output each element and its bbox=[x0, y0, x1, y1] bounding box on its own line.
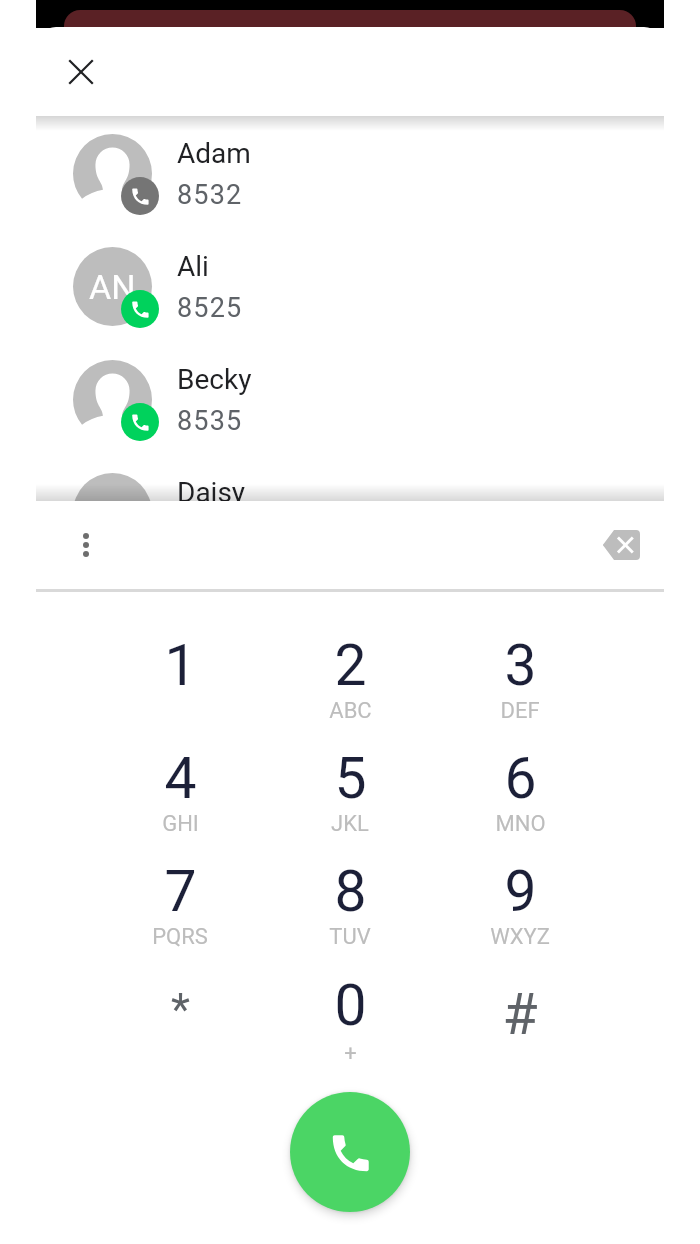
button[interactable]: 6 bbox=[435, 727, 605, 840]
button[interactable]: Close bbox=[58, 49, 104, 95]
button[interactable]: 4 bbox=[95, 727, 265, 840]
staticText: 7 bbox=[164, 858, 197, 925]
staticText: 8 bbox=[334, 858, 367, 925]
staticText: + bbox=[344, 1041, 357, 1067]
button[interactable]: AN bbox=[36, 230, 664, 343]
staticText: 1 bbox=[164, 632, 197, 699]
button[interactable]: 7 bbox=[95, 840, 265, 953]
staticText: 0 bbox=[334, 972, 367, 1039]
staticText: 8535 bbox=[177, 405, 243, 437]
staticText: MNO bbox=[495, 811, 546, 837]
staticText: JKL bbox=[331, 811, 369, 837]
button[interactable]: Call bbox=[290, 1092, 410, 1212]
staticText: AN bbox=[89, 267, 136, 307]
staticText: 3 bbox=[504, 632, 537, 699]
staticText: DEF bbox=[500, 698, 540, 724]
staticText: 5 bbox=[334, 745, 367, 812]
button[interactable]: 5 bbox=[265, 727, 435, 840]
button[interactable]: Adam bbox=[36, 117, 664, 230]
staticText: WXYZ bbox=[490, 924, 550, 950]
staticText: Becky bbox=[177, 363, 252, 396]
button[interactable]: 0 bbox=[265, 954, 435, 1067]
staticText: 4 bbox=[164, 745, 197, 812]
button[interactable]: 1 bbox=[95, 614, 265, 727]
button[interactable]: More options bbox=[63, 522, 109, 568]
staticText: # bbox=[502, 981, 538, 1048]
staticText: GHI bbox=[162, 811, 199, 837]
button[interactable]: 8 bbox=[265, 840, 435, 953]
button[interactable]: Daisy bbox=[36, 456, 664, 501]
staticText: * bbox=[171, 984, 190, 1036]
staticText: 2 bbox=[334, 632, 367, 699]
staticText: PQRS bbox=[152, 924, 208, 950]
button[interactable]: Backspace bbox=[593, 517, 649, 573]
staticText: Adam bbox=[177, 137, 251, 170]
staticText: Ali bbox=[177, 250, 209, 283]
staticText: 6 bbox=[504, 745, 537, 812]
staticText: 8525 bbox=[177, 292, 243, 324]
staticText: ABC bbox=[329, 698, 372, 724]
staticText: Daisy bbox=[177, 476, 246, 501]
button[interactable]: 2 bbox=[265, 614, 435, 727]
staticText: 9 bbox=[504, 858, 537, 925]
button[interactable]: 3 bbox=[435, 614, 605, 727]
button[interactable]: Becky bbox=[36, 343, 664, 456]
staticText: TUV bbox=[329, 924, 371, 950]
button[interactable]: 9 bbox=[435, 840, 605, 953]
button[interactable]: * bbox=[95, 954, 265, 1067]
button[interactable]: # bbox=[435, 954, 605, 1067]
staticText: 8532 bbox=[177, 179, 243, 211]
